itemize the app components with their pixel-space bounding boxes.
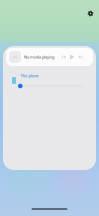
button[interactable]: Play [68,51,76,63]
staticText: This phone [20,73,38,78]
button[interactable]: This phone [3,66,96,88]
button[interactable]: Settings [84,7,97,20]
button[interactable]: Next track [76,51,85,63]
button[interactable]: Previous track [59,51,68,63]
staticText: No media playing [24,54,54,60]
